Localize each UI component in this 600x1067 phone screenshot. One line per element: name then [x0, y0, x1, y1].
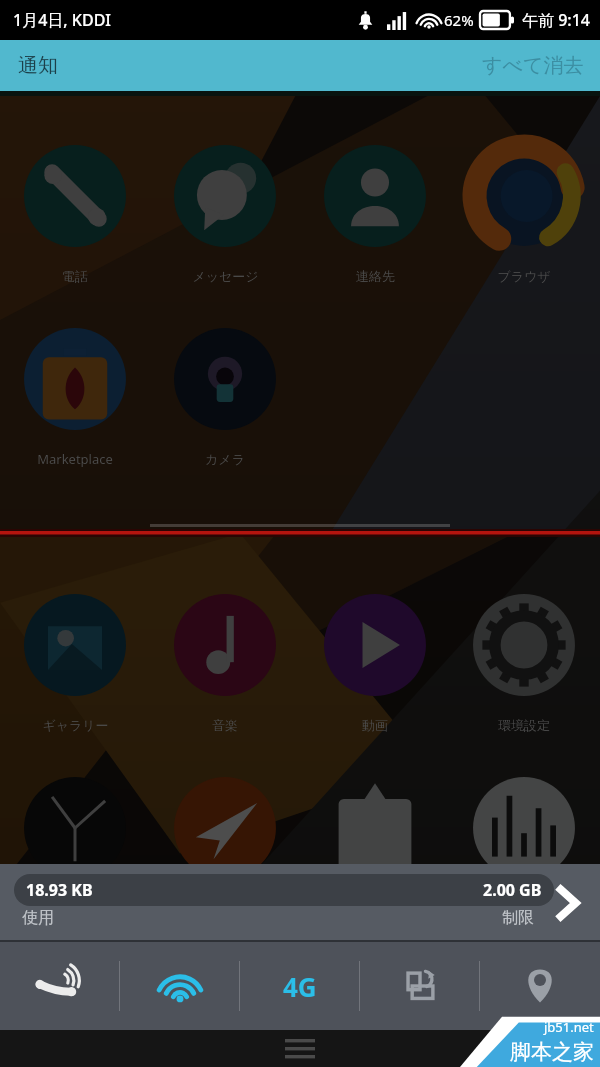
button[interactable]: すべて消去: [474, 49, 592, 82]
button[interactable]: 18.93 KB: [0, 864, 600, 942]
staticText: jb51.net: [544, 1018, 594, 1036]
staticText: 2.00 GB: [483, 879, 542, 901]
staticText: Marketplace: [37, 450, 113, 468]
staticText: ブラウザ: [497, 268, 551, 284]
button[interactable]: 連絡先: [301, 263, 449, 289]
button[interactable]: 画面の自動回転: [360, 942, 480, 1030]
button[interactable]: Wi-Fi: [120, 942, 240, 1030]
button[interactable]: メニュー: [265, 1030, 335, 1067]
staticText: 電話: [62, 268, 88, 284]
staticText: 脚本之家: [510, 1039, 594, 1065]
button[interactable]: カメラ: [151, 446, 299, 472]
button[interactable]: 通知: [10, 49, 66, 82]
staticText: 1月4日, KDDI: [13, 9, 112, 31]
staticText: 動画: [362, 717, 388, 733]
button[interactable]: マナーモード: [0, 942, 120, 1030]
button[interactable]: 位置情報: [480, 942, 600, 1030]
button[interactable]: 動画: [301, 712, 449, 738]
button[interactable]: メッセージ: [151, 263, 299, 289]
staticText: 連絡先: [356, 268, 395, 284]
button[interactable]: Marketplace: [1, 446, 149, 472]
staticText: 18.93 KB: [26, 879, 93, 901]
button[interactable]: モバイルデータ 4G: [240, 942, 360, 1030]
button[interactable]: 音楽: [151, 712, 299, 738]
button[interactable]: ブラウザ: [450, 263, 598, 289]
staticText: 環境設定: [498, 717, 550, 733]
staticText: ギャラリー: [42, 717, 109, 733]
button[interactable]: 電話: [1, 263, 149, 289]
staticText: カメラ: [205, 451, 245, 467]
staticText: メッセージ: [192, 268, 259, 284]
button[interactable]: 環境設定: [450, 712, 598, 738]
staticText: 制限: [502, 908, 534, 928]
button[interactable]: データ使用量の詳細: [542, 873, 594, 933]
staticText: すべて消去: [482, 53, 584, 78]
staticText: 午前 9:14: [522, 9, 590, 31]
staticText: 通知: [18, 53, 58, 78]
button[interactable]: ギャラリー: [1, 712, 149, 738]
staticText: 62%: [444, 10, 474, 30]
staticText: 使用: [22, 908, 54, 928]
staticText: 4G: [283, 969, 317, 1004]
staticText: 音楽: [212, 717, 238, 733]
